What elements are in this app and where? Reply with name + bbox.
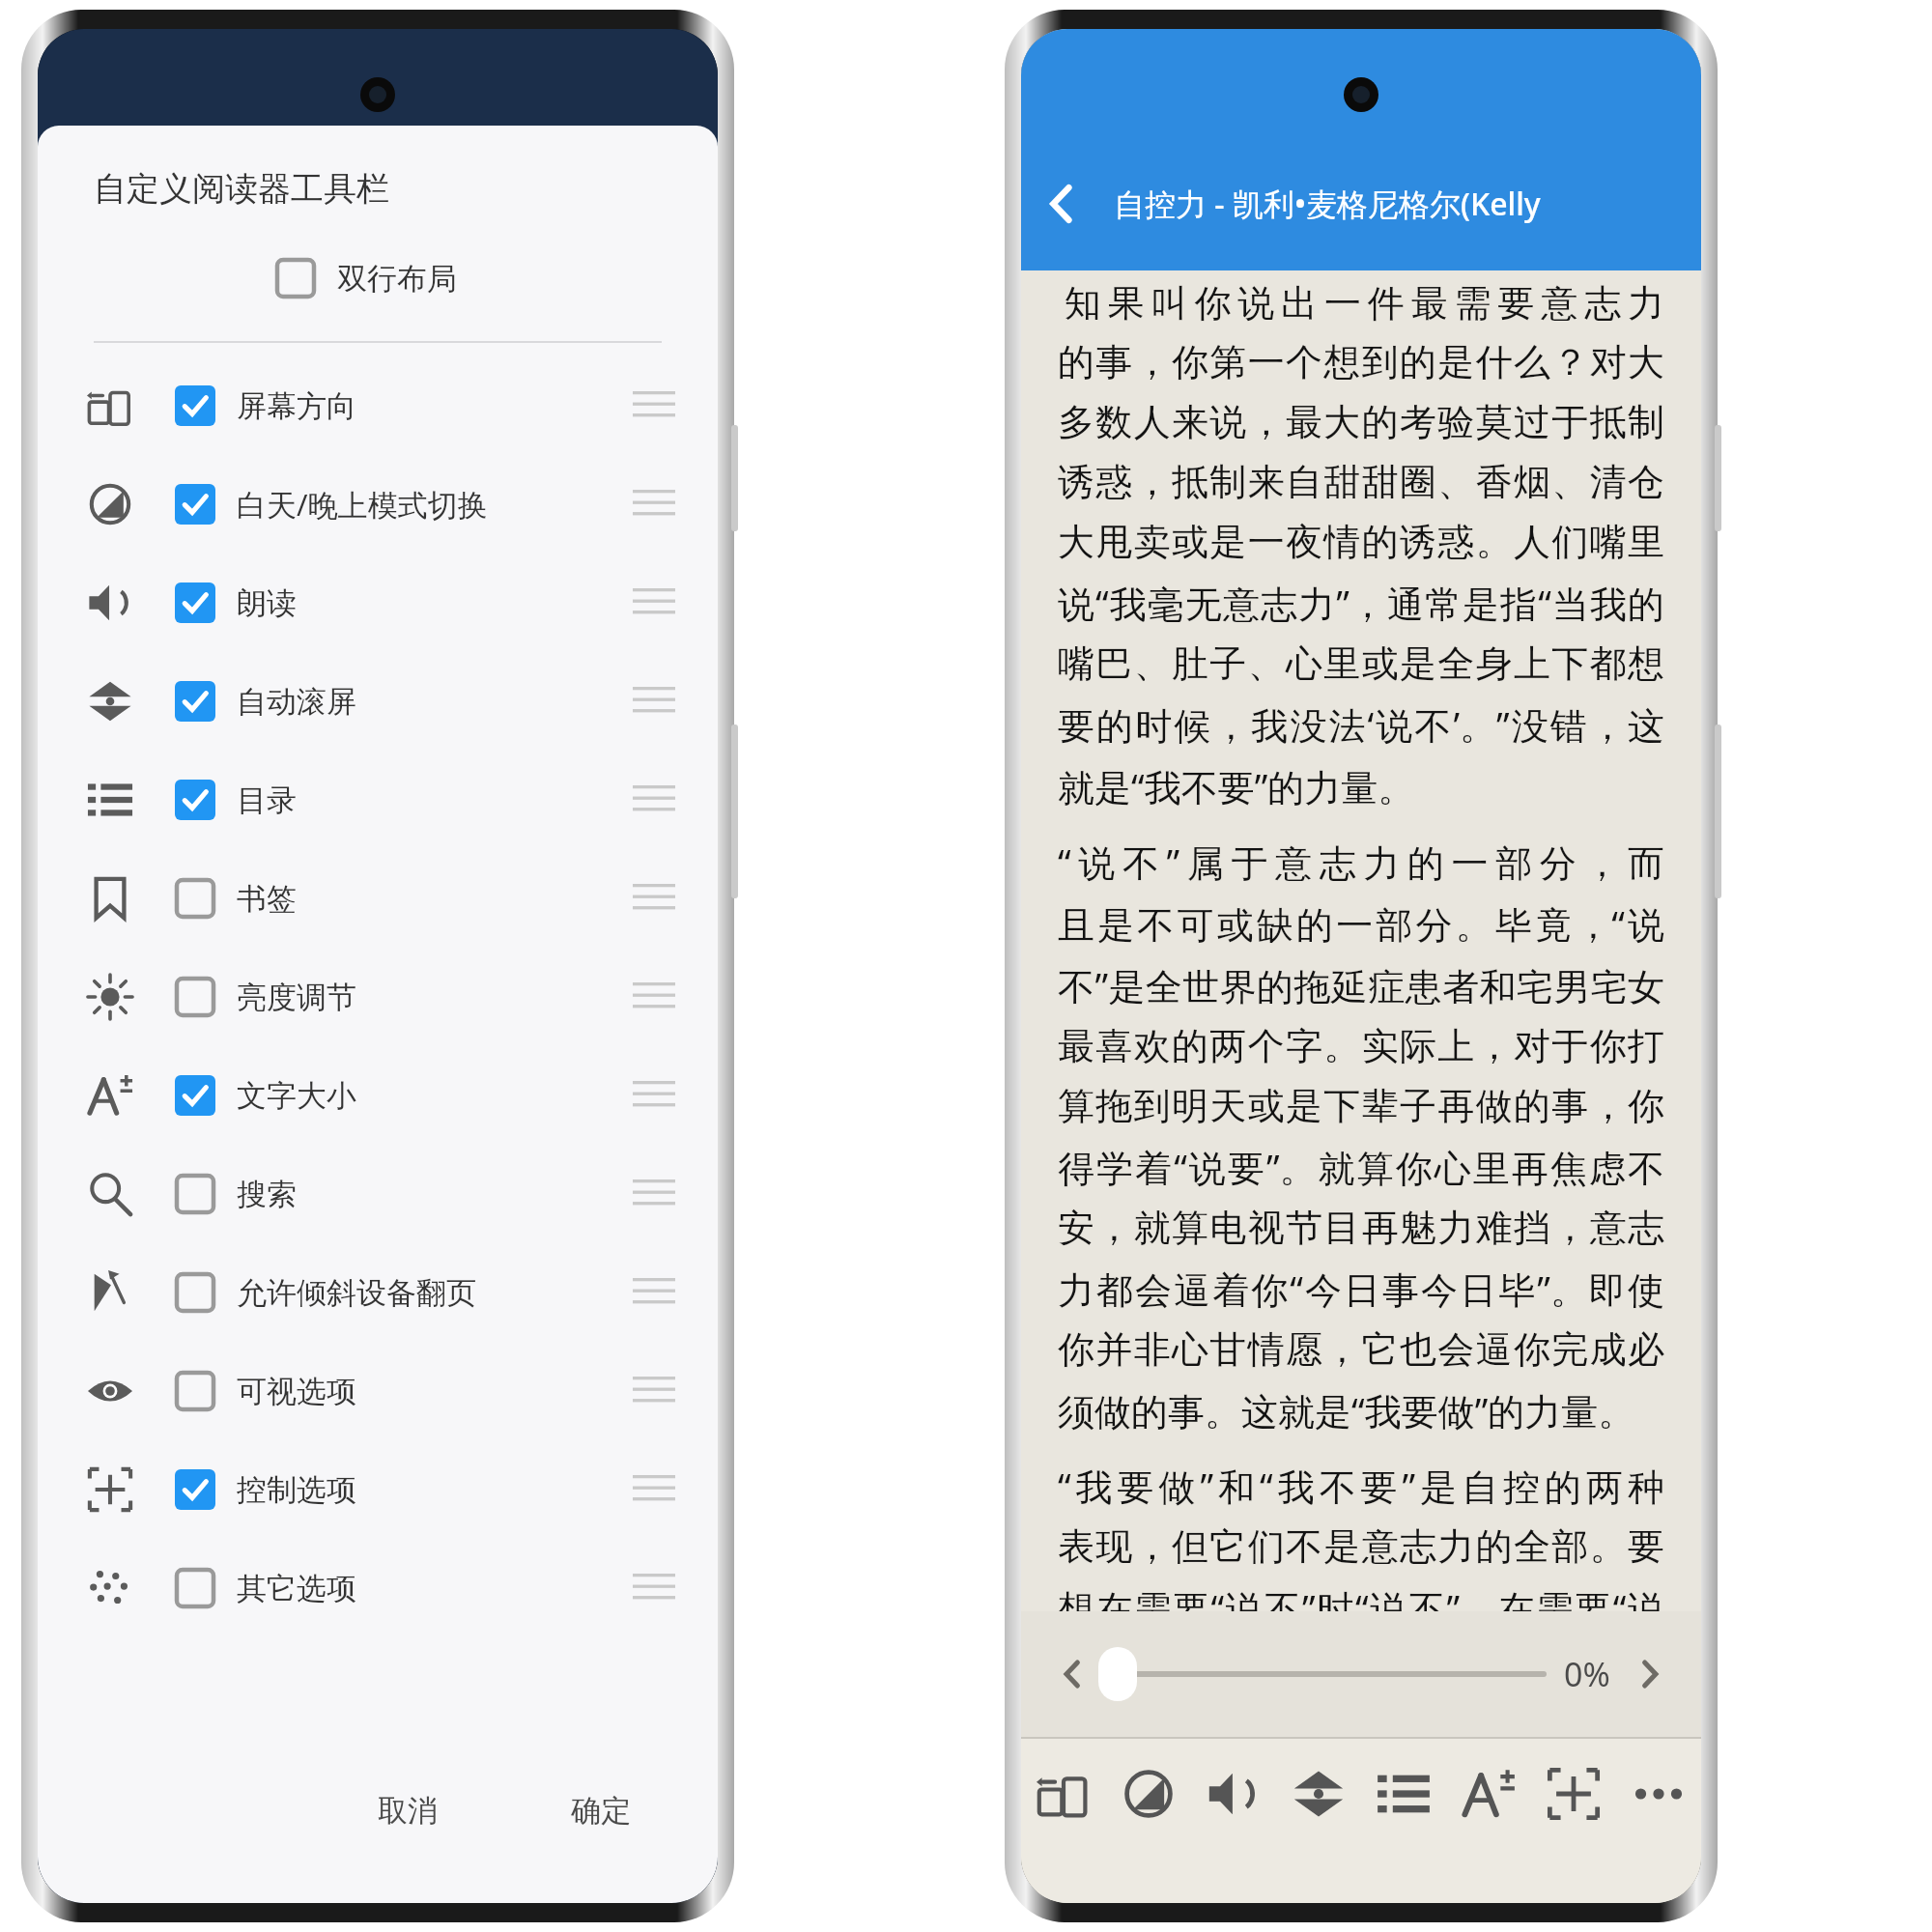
staticText: 自控力 - 凯利•麦格尼格尔(Kelly McGonigal): [1114, 183, 1701, 225]
button[interactable]: 白天/晚上模式切换: [38, 455, 718, 554]
button[interactable]: 朗读: [38, 554, 718, 652]
button[interactable]: Auto scroll: [1276, 1739, 1361, 1903]
staticText: 确定: [571, 1792, 631, 1830]
staticText: 可视选项: [237, 1373, 356, 1410]
button[interactable]: Previous: [1046, 1648, 1098, 1700]
button[interactable]: 其它选项: [38, 1539, 718, 1637]
staticText: 知果叫你说出一件最需要意志力的事，你第一个想到的是什么？对大多数人来说，最大的考…: [1058, 276, 1664, 811]
staticText: 0%: [1564, 1652, 1610, 1696]
staticText: 自定义阅读器工具栏: [94, 168, 389, 210]
button[interactable]: Next: [1624, 1648, 1676, 1700]
button[interactable]: More: [1616, 1739, 1701, 1903]
button[interactable]: 目录: [38, 751, 718, 849]
staticText: 允许倾斜设备翻页: [237, 1274, 476, 1312]
button[interactable]: 双行布局: [38, 254, 718, 302]
button[interactable]: Font size: [1446, 1739, 1531, 1903]
button[interactable]: Day night mode: [1106, 1739, 1191, 1903]
staticText: 白天/晚上模式切换: [237, 484, 488, 525]
button[interactable]: 取消: [349, 1778, 467, 1843]
staticText: 目录: [237, 781, 297, 819]
button[interactable]: 自动滚屏: [38, 652, 718, 751]
button[interactable]: Progress: [1098, 1647, 1137, 1701]
button[interactable]: 书签: [38, 849, 718, 948]
staticText: 其它选项: [237, 1570, 356, 1607]
button[interactable]: 允许倾斜设备翻页: [38, 1243, 718, 1342]
button[interactable]: 亮度调节: [38, 948, 718, 1046]
button[interactable]: Controls: [1531, 1739, 1616, 1903]
button[interactable]: Read aloud: [1191, 1739, 1276, 1903]
staticText: 亮度调节: [237, 979, 356, 1016]
button[interactable]: 确定: [542, 1778, 660, 1843]
button[interactable]: 可视选项: [38, 1342, 718, 1440]
button[interactable]: 控制选项: [38, 1440, 718, 1539]
button[interactable]: 搜索: [38, 1145, 718, 1243]
staticText: 控制选项: [237, 1471, 356, 1509]
button[interactable]: 文字大小: [38, 1046, 718, 1145]
button[interactable]: Table of contents: [1361, 1739, 1446, 1903]
staticText: “我要做”和“我不要”是自控的两种表现，但它们不是意志力的全部。要想在需要“说不…: [1058, 1461, 1664, 1611]
button[interactable]: Back: [1021, 162, 1104, 245]
button[interactable]: Screen orientation: [1021, 1739, 1106, 1903]
staticText: 取消: [378, 1792, 438, 1830]
staticText: “说不”属于意志力的一部分，而且是不可或缺的一部分。毕竟，“说不”是全世界的拖延…: [1058, 837, 1664, 1435]
staticText: 自动滚屏: [237, 683, 356, 721]
staticText: 搜索: [237, 1176, 297, 1213]
staticText: 文字大小: [237, 1077, 356, 1115]
button[interactable]: 屏幕方向: [38, 356, 718, 455]
staticText: 朗读: [237, 584, 297, 622]
staticText: 屏幕方向: [237, 387, 356, 425]
staticText: 书签: [237, 880, 297, 918]
staticText: 双行布局: [337, 260, 457, 298]
